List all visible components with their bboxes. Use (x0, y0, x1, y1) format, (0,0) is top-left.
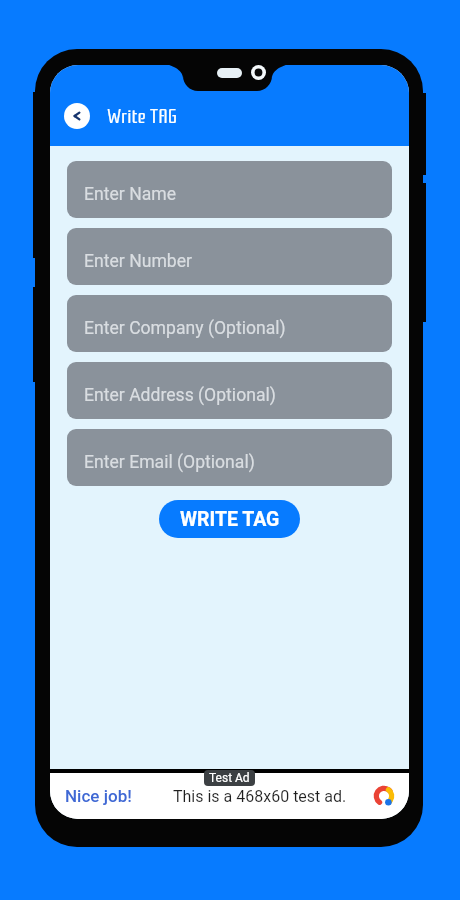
staticText: Test Ad (209, 771, 250, 785)
button[interactable]: Enter Address (Optional) (67, 362, 392, 419)
staticText: Enter Company (Optional) (84, 318, 286, 339)
staticText: WRITE TAG (180, 508, 280, 531)
staticText: Nice job! (65, 786, 132, 806)
staticText: This is a 468x60 test ad. (173, 787, 347, 806)
staticText: Enter Number (84, 251, 192, 272)
button[interactable]: Enter Number (67, 228, 392, 285)
staticText: Enter Email (Optional) (84, 452, 255, 473)
button[interactable]: Enter Company (Optional) (67, 295, 392, 352)
button[interactable]: Enter Email (Optional) (67, 429, 392, 486)
button[interactable]: WRITE TAG (159, 500, 300, 538)
staticText: Enter Address (Optional) (84, 385, 276, 406)
button[interactable]: Back (64, 103, 90, 129)
button[interactable]: Enter Name (67, 161, 392, 218)
staticText: Enter Name (84, 184, 177, 205)
staticText: Write TAG (107, 105, 177, 128)
